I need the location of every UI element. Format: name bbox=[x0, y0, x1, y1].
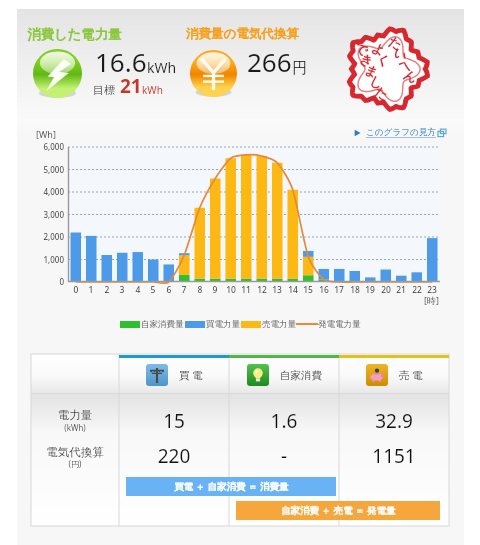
staticText: 1.6 bbox=[229, 408, 339, 434]
staticText: 11 bbox=[238, 284, 254, 296]
staticText: 目標 bbox=[93, 83, 115, 97]
staticText: 自家消費 ＋ 売電 ＝ 発電量 bbox=[281, 504, 396, 517]
staticText: (円) bbox=[31, 458, 119, 469]
staticText: よ bbox=[369, 39, 389, 59]
staticText: 18 bbox=[347, 284, 363, 296]
staticText: 8 bbox=[192, 284, 208, 296]
button[interactable]: このグラフの見方 bbox=[354, 126, 446, 139]
button[interactable]: 自家消費 bbox=[229, 357, 339, 393]
staticText: 2,000 bbox=[34, 231, 64, 242]
staticText: 売電力量 bbox=[262, 319, 296, 330]
staticText: 10 bbox=[223, 284, 239, 296]
staticText: た bbox=[386, 33, 406, 53]
staticText: 220 bbox=[119, 443, 229, 469]
staticText: い bbox=[391, 44, 411, 64]
staticText: 14 bbox=[285, 284, 301, 296]
staticText: 買電力量 bbox=[206, 319, 240, 330]
staticText: 13 bbox=[269, 284, 285, 296]
staticText: 0 bbox=[68, 284, 84, 296]
staticText: 自家消費量 bbox=[141, 319, 184, 330]
staticText: 1 bbox=[83, 284, 99, 296]
staticText: 消費量の電気代換算 bbox=[186, 26, 299, 42]
staticText: 15 bbox=[300, 284, 316, 296]
staticText: 自家消費 bbox=[280, 369, 322, 382]
staticText: 電力量 bbox=[31, 408, 119, 422]
staticText: 電気代換算 bbox=[31, 445, 119, 459]
button[interactable]: 買 電 bbox=[119, 357, 229, 393]
button[interactable]: 売 電 bbox=[339, 357, 449, 393]
staticText: 2 bbox=[99, 284, 115, 296]
staticText: [Wh] bbox=[36, 128, 56, 140]
staticText: 6 bbox=[161, 284, 177, 296]
staticText: 16.6 bbox=[95, 44, 147, 79]
staticText: 5 bbox=[145, 284, 161, 296]
staticText: 15 bbox=[119, 408, 229, 434]
staticText: 売 電 bbox=[399, 368, 423, 382]
staticText: 19 bbox=[362, 284, 378, 296]
staticText: 4,000 bbox=[34, 186, 64, 197]
staticText: (kWh) bbox=[31, 422, 119, 433]
staticText: 4 bbox=[130, 284, 146, 296]
staticText: - bbox=[229, 443, 339, 469]
staticText: 3,000 bbox=[34, 209, 64, 220]
staticText: き bbox=[357, 50, 377, 70]
staticText: く bbox=[374, 50, 394, 70]
staticText: し bbox=[367, 72, 387, 92]
staticText: 23 bbox=[424, 284, 440, 296]
staticText: 16 bbox=[316, 284, 332, 296]
staticText: で bbox=[352, 39, 372, 59]
staticText: 1,000 bbox=[34, 254, 64, 265]
staticText: 17 bbox=[331, 284, 347, 296]
staticText: 発電電力量 bbox=[318, 319, 361, 330]
staticText: 7 bbox=[176, 284, 192, 296]
staticText: 円 bbox=[292, 59, 307, 78]
staticText: 21 bbox=[115, 73, 142, 99]
staticText: 21 bbox=[393, 284, 409, 296]
staticText: 0 bbox=[34, 276, 64, 287]
staticText: 5,000 bbox=[34, 164, 64, 175]
staticText: 12 bbox=[254, 284, 270, 296]
staticText: 3 bbox=[114, 284, 130, 296]
staticText: ん bbox=[401, 66, 421, 86]
staticText: [時] bbox=[424, 294, 439, 306]
staticText: ま bbox=[362, 61, 382, 81]
staticText: 32.9 bbox=[339, 408, 449, 434]
staticText: へ bbox=[396, 55, 416, 75]
staticText: kWh bbox=[142, 83, 163, 97]
button[interactable]: 自家消費 ＋ 売電 ＝ 発電量 bbox=[236, 501, 440, 520]
staticText: 買電 ＋ 自家消費 ＝ 消費量 bbox=[174, 480, 289, 493]
staticText: た bbox=[372, 83, 392, 103]
button[interactable]: 買電 ＋ 自家消費 ＝ 消費量 bbox=[126, 477, 336, 496]
staticText: 22 bbox=[409, 284, 425, 296]
staticText: 266 bbox=[247, 44, 292, 79]
staticText: 9 bbox=[207, 284, 223, 296]
staticText: 20 bbox=[378, 284, 394, 296]
staticText: 消費した電力量 bbox=[27, 26, 122, 43]
staticText: 1151 bbox=[339, 443, 449, 469]
staticText: kWh bbox=[147, 58, 177, 77]
staticText: このグラフの見方 bbox=[366, 127, 436, 138]
staticText: 6,000 bbox=[34, 141, 64, 152]
staticText: 買 電 bbox=[179, 368, 203, 382]
